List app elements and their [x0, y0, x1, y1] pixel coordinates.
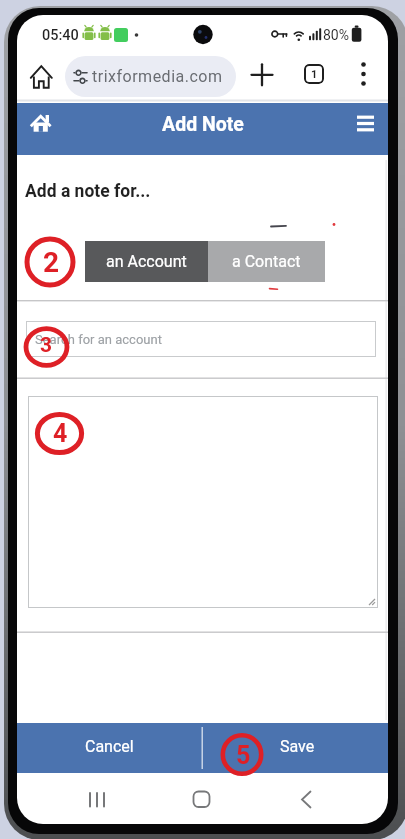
- button[interactable]: Save: [204, 721, 390, 771]
- button[interactable]: [248, 61, 276, 89]
- button[interactable]: [77, 779, 117, 819]
- staticText: Add Note: [162, 113, 244, 136]
- button[interactable]: Search for an account: [26, 321, 376, 357]
- button[interactable]: [182, 779, 222, 819]
- staticText: 2: [43, 246, 60, 279]
- staticText: a Contact: [232, 252, 301, 271]
- staticText: 4: [53, 419, 68, 448]
- button[interactable]: a Contact: [208, 241, 325, 282]
- button[interactable]: [350, 109, 382, 139]
- staticText: Add a note for...: [25, 181, 151, 202]
- staticText: trixformedia.com: [92, 67, 223, 86]
- staticText: Search for an account: [35, 332, 162, 347]
- staticText: an Account: [106, 252, 187, 271]
- button[interactable]: [65, 56, 236, 97]
- staticText: 05:40: [42, 27, 79, 43]
- staticText: 5: [236, 741, 251, 770]
- button[interactable]: [28, 396, 378, 608]
- staticText: Cancel: [85, 737, 134, 756]
- staticText: 80%: [323, 27, 349, 43]
- button[interactable]: 1: [304, 64, 324, 84]
- staticText: Save: [280, 737, 315, 756]
- button[interactable]: [353, 60, 375, 88]
- staticText: 3: [40, 333, 53, 358]
- button[interactable]: an Account: [85, 241, 208, 282]
- staticText: 1: [311, 68, 318, 81]
- button[interactable]: Cancel: [17, 721, 202, 771]
- button[interactable]: [26, 109, 56, 139]
- button[interactable]: [28, 62, 56, 90]
- button[interactable]: [288, 779, 328, 819]
